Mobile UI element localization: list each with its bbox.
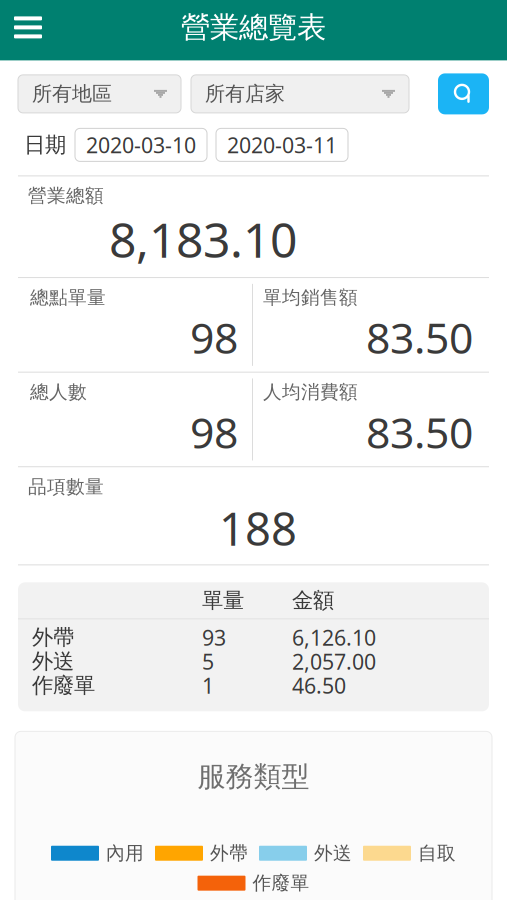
staticText: 所有地區 [32,82,112,106]
staticText: 188 [219,498,297,558]
staticText: 人均消費額 [263,381,358,403]
staticText: 營業總額 [28,184,104,207]
staticText: 內用 [106,842,144,865]
staticText: 2020-03-10 [86,131,196,159]
staticText: 98 [190,309,238,366]
staticText: 單均銷售額 [263,286,358,309]
staticText: 所有店家 [205,82,285,106]
staticText: 外送 [32,648,74,674]
staticText: 93 [202,623,226,651]
button[interactable]: 所有地區 [18,75,181,113]
button[interactable]: 2020-03-10 [75,128,207,161]
staticText: 自取 [418,842,456,865]
staticText: 1 [202,671,214,699]
staticText: 2020-03-11 [227,131,337,159]
staticText: 外帶 [210,842,248,865]
staticText: 總點單量 [30,286,106,309]
staticText: 金額 [292,587,334,613]
staticText: 作廢單 [252,872,309,895]
staticText: 6,126.10 [292,623,376,651]
staticText: 46.50 [292,671,346,699]
staticText: 總人數 [30,381,87,403]
button[interactable]: Menu [0,4,56,50]
staticText: 5 [202,647,214,675]
staticText: 83.50 [366,404,473,460]
staticText: 日期 [24,132,66,158]
button[interactable]: 所有店家 [191,75,409,113]
staticText: 8,183.10 [109,207,297,271]
staticText: 外送 [314,842,352,865]
staticText: 品項數量 [28,475,104,498]
staticText: 2,057.00 [292,647,376,675]
staticText: 營業總覽表 [181,9,326,45]
button[interactable]: 2020-03-11 [216,128,348,161]
staticText: 98 [190,404,238,460]
staticText: 單量 [202,587,244,613]
staticText: 外帶 [32,624,74,650]
button[interactable]: Search [438,73,489,114]
staticText: 服務類型 [197,759,309,794]
staticText: 83.50 [366,309,473,366]
staticText: 作廢單 [32,672,95,698]
